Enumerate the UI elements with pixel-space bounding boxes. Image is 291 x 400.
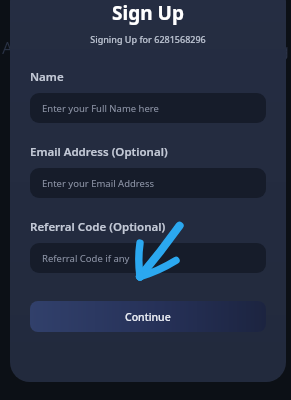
staticText: Sign Up	[10, 0, 286, 26]
staticText: Continue	[125, 310, 171, 324]
button[interactable]: Enter your Full Name here	[30, 93, 266, 123]
staticText: Enter your Email Address	[42, 177, 155, 190]
staticText: Referral Code if any	[42, 252, 130, 265]
staticText: Name	[30, 69, 64, 85]
button[interactable]: Enter your Email Address	[30, 168, 266, 198]
staticText: Enter your Full Name here	[42, 102, 159, 115]
button[interactable]: Referral Code if any	[30, 243, 266, 273]
other: Annotation arrow pointing to referral co…	[128, 222, 188, 284]
staticText: ng	[268, 38, 289, 61]
staticText: A	[2, 36, 13, 59]
staticText: Referral Code (Optional)	[30, 219, 166, 235]
button[interactable]: Continue	[30, 301, 266, 332]
staticText: Email Address (Optional)	[30, 144, 168, 160]
staticText: Signing Up for 6281568296	[10, 33, 286, 45]
